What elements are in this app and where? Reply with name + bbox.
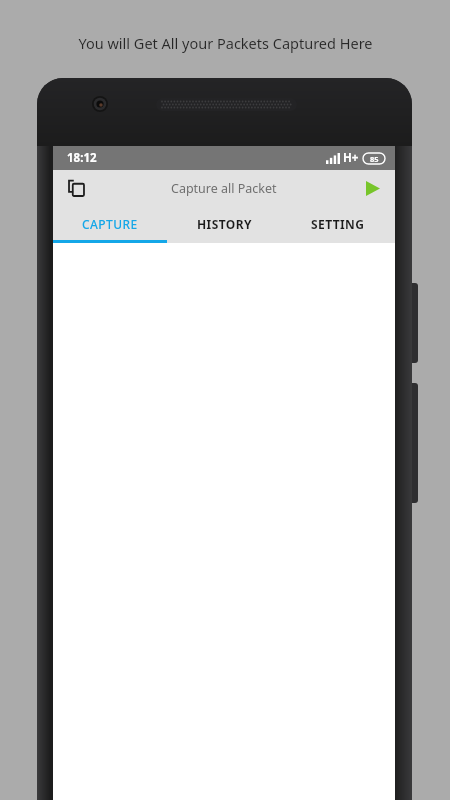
- staticText: HISTORY: [197, 216, 252, 232]
- staticText: SETTING: [311, 216, 365, 232]
- staticText: 85: [370, 154, 379, 164]
- button[interactable]: Open saved captures: [59, 171, 93, 205]
- staticText: Capture all Packet: [171, 180, 277, 197]
- button[interactable]: Start capture: [357, 172, 389, 204]
- button[interactable]: SETTING: [281, 206, 395, 243]
- staticText: CAPTURE: [82, 216, 138, 232]
- staticText: H+: [343, 150, 359, 166]
- staticText: 18:12: [67, 150, 97, 166]
- button[interactable]: CAPTURE: [53, 206, 167, 243]
- staticText: You will Get All your Packets Captured H…: [78, 33, 373, 53]
- button[interactable]: HISTORY: [167, 206, 281, 243]
